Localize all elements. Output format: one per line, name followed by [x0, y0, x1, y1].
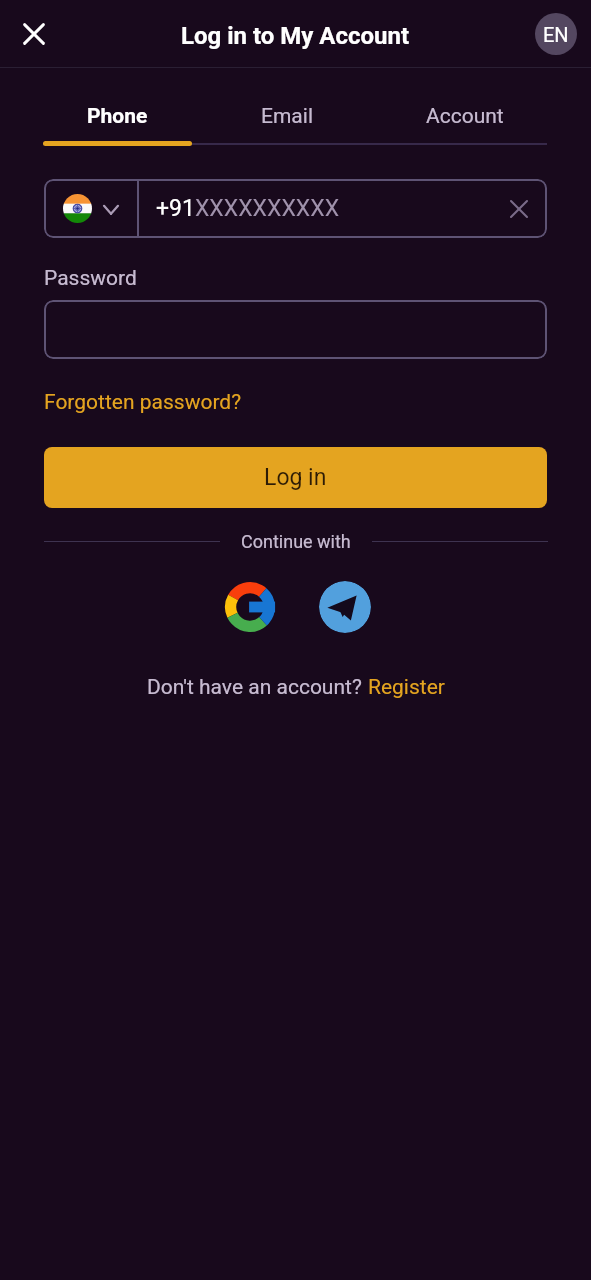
button[interactable]: Clear — [495, 185, 543, 233]
button[interactable]: Select country code — [44, 179, 137, 238]
staticText: Don't have an account? — [147, 675, 368, 700]
button[interactable]: Phone — [43, 68, 192, 145]
button[interactable]: Email — [192, 68, 382, 145]
button[interactable]: Continue with Google — [224, 581, 276, 633]
staticText: Password — [44, 266, 137, 291]
staticText: Log in to My Account — [181, 22, 410, 50]
button[interactable]: Close — [12, 12, 56, 56]
button[interactable]: Log in — [44, 447, 547, 508]
staticText: Phone — [87, 104, 148, 129]
button[interactable]: Account — [382, 68, 547, 145]
staticText: EN — [543, 23, 569, 46]
staticText: +91XXXXXXXXXX — [156, 195, 340, 222]
staticText: Forgotten password? — [44, 390, 242, 415]
staticText: Account — [426, 104, 504, 129]
button[interactable]: Continue with Telegram — [319, 581, 371, 633]
staticText: Email — [261, 104, 313, 129]
button[interactable]: Language EN — [535, 13, 577, 55]
staticText: Register — [368, 675, 445, 700]
button[interactable] — [44, 300, 547, 359]
button[interactable]: Register — [368, 675, 445, 700]
button[interactable]: Forgotten password? — [44, 390, 242, 415]
staticText: Continue with — [241, 531, 351, 552]
staticText: Log in — [264, 464, 327, 491]
